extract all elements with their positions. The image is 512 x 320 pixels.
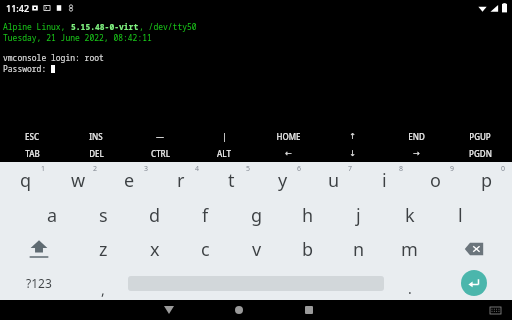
button[interactable]: TAB: [0, 145, 64, 162]
button[interactable]: ESC: [0, 128, 64, 145]
staticText: r: [177, 168, 185, 193]
button[interactable]: z: [78, 232, 129, 266]
staticText: m: [401, 237, 418, 262]
staticText: 2: [93, 164, 98, 174]
button[interactable]: g: [231, 198, 282, 232]
button[interactable]: d: [129, 198, 180, 232]
button[interactable]: Shift: [0, 232, 78, 266]
button[interactable]: n: [333, 232, 384, 266]
staticText: ↓: [349, 149, 356, 158]
staticText: h: [302, 203, 314, 228]
staticText: 9: [450, 164, 455, 174]
staticText: s: [99, 203, 108, 228]
staticText: i: [382, 168, 387, 193]
staticText: ,: [101, 280, 105, 299]
button[interactable]: |: [192, 128, 256, 145]
button[interactable]: ALT: [192, 145, 256, 162]
staticText: z: [99, 237, 108, 262]
button[interactable]: m: [384, 232, 435, 266]
button[interactable]: ↓: [320, 145, 384, 162]
staticText: q: [20, 168, 32, 193]
button[interactable]: o: [410, 162, 461, 198]
staticText: TAB: [25, 148, 40, 159]
button[interactable]: Recent apps: [279, 300, 339, 320]
staticText: f: [202, 203, 209, 228]
staticText: b: [302, 237, 314, 262]
button[interactable]: v: [231, 232, 282, 266]
button[interactable]: l: [435, 198, 486, 232]
button[interactable]: s: [78, 198, 129, 232]
staticText: Alpine Linux,: [3, 21, 71, 32]
button[interactable]: w: [52, 162, 104, 198]
staticText: v: [252, 237, 262, 262]
button[interactable]: c: [180, 232, 231, 266]
staticText: 3: [144, 164, 149, 174]
staticText: u: [328, 168, 340, 193]
staticText: Password:: [3, 63, 51, 74]
staticText: g: [251, 203, 263, 228]
button[interactable]: CTRL: [128, 145, 192, 162]
button[interactable]: INS: [64, 128, 128, 145]
button[interactable]: —: [128, 128, 192, 145]
staticText: DEL: [89, 148, 104, 159]
staticText: —: [156, 131, 164, 142]
button[interactable]: ↑: [320, 128, 384, 145]
button[interactable]: Back: [139, 300, 199, 320]
staticText: vmconsole login: root: [3, 52, 104, 63]
button[interactable]: Home: [209, 300, 269, 320]
button[interactable]: e: [104, 162, 155, 198]
button[interactable]: PGUP: [448, 128, 512, 145]
staticText: PGDN: [469, 148, 492, 159]
staticText: INS: [89, 131, 103, 142]
button[interactable]: →: [384, 145, 448, 162]
button[interactable]: x: [129, 232, 180, 266]
button[interactable]: j: [333, 198, 384, 232]
staticText: 7: [348, 164, 353, 174]
staticText: 1: [41, 164, 46, 174]
button[interactable]: Space: [128, 275, 384, 291]
button[interactable]: t: [206, 162, 257, 198]
staticText: k: [405, 203, 415, 228]
button[interactable]: Switch keyboard: [478, 300, 512, 320]
staticText: HOME: [276, 131, 301, 142]
button[interactable]: a: [27, 198, 78, 232]
button[interactable]: ←: [256, 145, 320, 162]
button[interactable]: p: [461, 162, 512, 198]
button[interactable]: PGDN: [448, 145, 512, 162]
staticText: w: [71, 168, 86, 193]
button[interactable]: ,: [77, 266, 128, 300]
button[interactable]: DEL: [64, 145, 128, 162]
staticText: l: [458, 203, 463, 228]
staticText: ?123: [26, 275, 52, 291]
staticText: d: [149, 203, 161, 228]
staticText: ESC: [25, 131, 39, 142]
button[interactable]: END: [384, 128, 448, 145]
button[interactable]: Enter: [435, 266, 512, 300]
staticText: e: [124, 168, 135, 193]
staticText: .: [408, 279, 412, 298]
button[interactable]: r: [155, 162, 206, 198]
staticText: Tuesday, 21 June 2022, 08:42:11: [3, 32, 152, 43]
staticText: 8: [399, 164, 404, 174]
staticText: n: [353, 237, 365, 262]
button[interactable]: b: [282, 232, 333, 266]
button[interactable]: k: [384, 198, 435, 232]
button[interactable]: u: [308, 162, 359, 198]
button[interactable]: y: [257, 162, 308, 198]
staticText: a: [47, 203, 58, 228]
button[interactable]: Backspace: [435, 232, 512, 266]
staticText: o: [430, 168, 441, 193]
button[interactable]: f: [180, 198, 231, 232]
button[interactable]: .: [384, 266, 435, 300]
staticText: CTRL: [151, 148, 170, 159]
button[interactable]: q: [0, 162, 52, 198]
button[interactable]: ?123: [0, 266, 77, 300]
staticText: j: [356, 203, 361, 228]
staticText: →: [413, 149, 420, 158]
staticText: 11:42: [6, 2, 30, 14]
button[interactable]: i: [359, 162, 410, 198]
staticText: , /dev/tty50: [139, 21, 197, 32]
button[interactable]: HOME: [256, 128, 320, 145]
staticText: c: [201, 237, 210, 262]
button[interactable]: h: [282, 198, 333, 232]
